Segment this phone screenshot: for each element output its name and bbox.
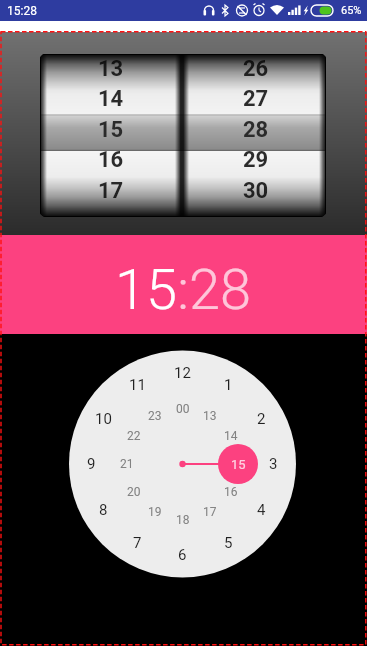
staticText: 13 — [203, 409, 217, 423]
staticText: 6 — [178, 546, 187, 564]
staticText: 1 — [224, 376, 233, 394]
staticText: 17 — [203, 505, 217, 519]
button[interactable]: 15:28 — [0, 235, 367, 334]
staticText: 27 — [243, 86, 269, 112]
staticText: 2 — [257, 410, 266, 428]
staticText: 20 — [127, 485, 141, 499]
staticText: 18 — [176, 513, 190, 527]
staticText: 16 — [98, 147, 124, 173]
staticText: 29 — [243, 147, 269, 173]
staticText: 14 — [98, 86, 124, 112]
staticText: 9 — [87, 455, 96, 473]
staticText: 11 — [129, 376, 146, 394]
staticText: 65% — [341, 4, 362, 17]
button[interactable]: 1 — [0, 334, 367, 646]
staticText: 16 — [224, 485, 238, 499]
staticText: 15:28 — [7, 4, 37, 18]
staticText: 7 — [133, 534, 142, 552]
staticText: 3 — [269, 455, 278, 473]
staticText: 15 — [98, 117, 124, 143]
staticText: 30 — [243, 178, 269, 204]
staticText: 14 — [224, 429, 238, 443]
staticText: 12 — [174, 364, 191, 382]
staticText: 8 — [99, 501, 108, 519]
staticText: 00 — [176, 402, 190, 416]
staticText: 23 — [148, 409, 162, 423]
button[interactable]: 13 — [0, 32, 367, 235]
staticText: 15:28 — [115, 257, 252, 323]
staticText: 22 — [127, 429, 141, 443]
staticText: 5 — [224, 534, 233, 552]
staticText: 10 — [95, 410, 112, 428]
staticText: 21 — [120, 457, 134, 471]
staticText: 13 — [98, 56, 124, 82]
staticText: 4 — [257, 501, 266, 519]
staticText: 28 — [243, 117, 269, 143]
staticText: 17 — [98, 178, 124, 204]
staticText: 15 — [231, 457, 246, 472]
staticText: 26 — [243, 56, 269, 82]
staticText: 19 — [148, 505, 162, 519]
